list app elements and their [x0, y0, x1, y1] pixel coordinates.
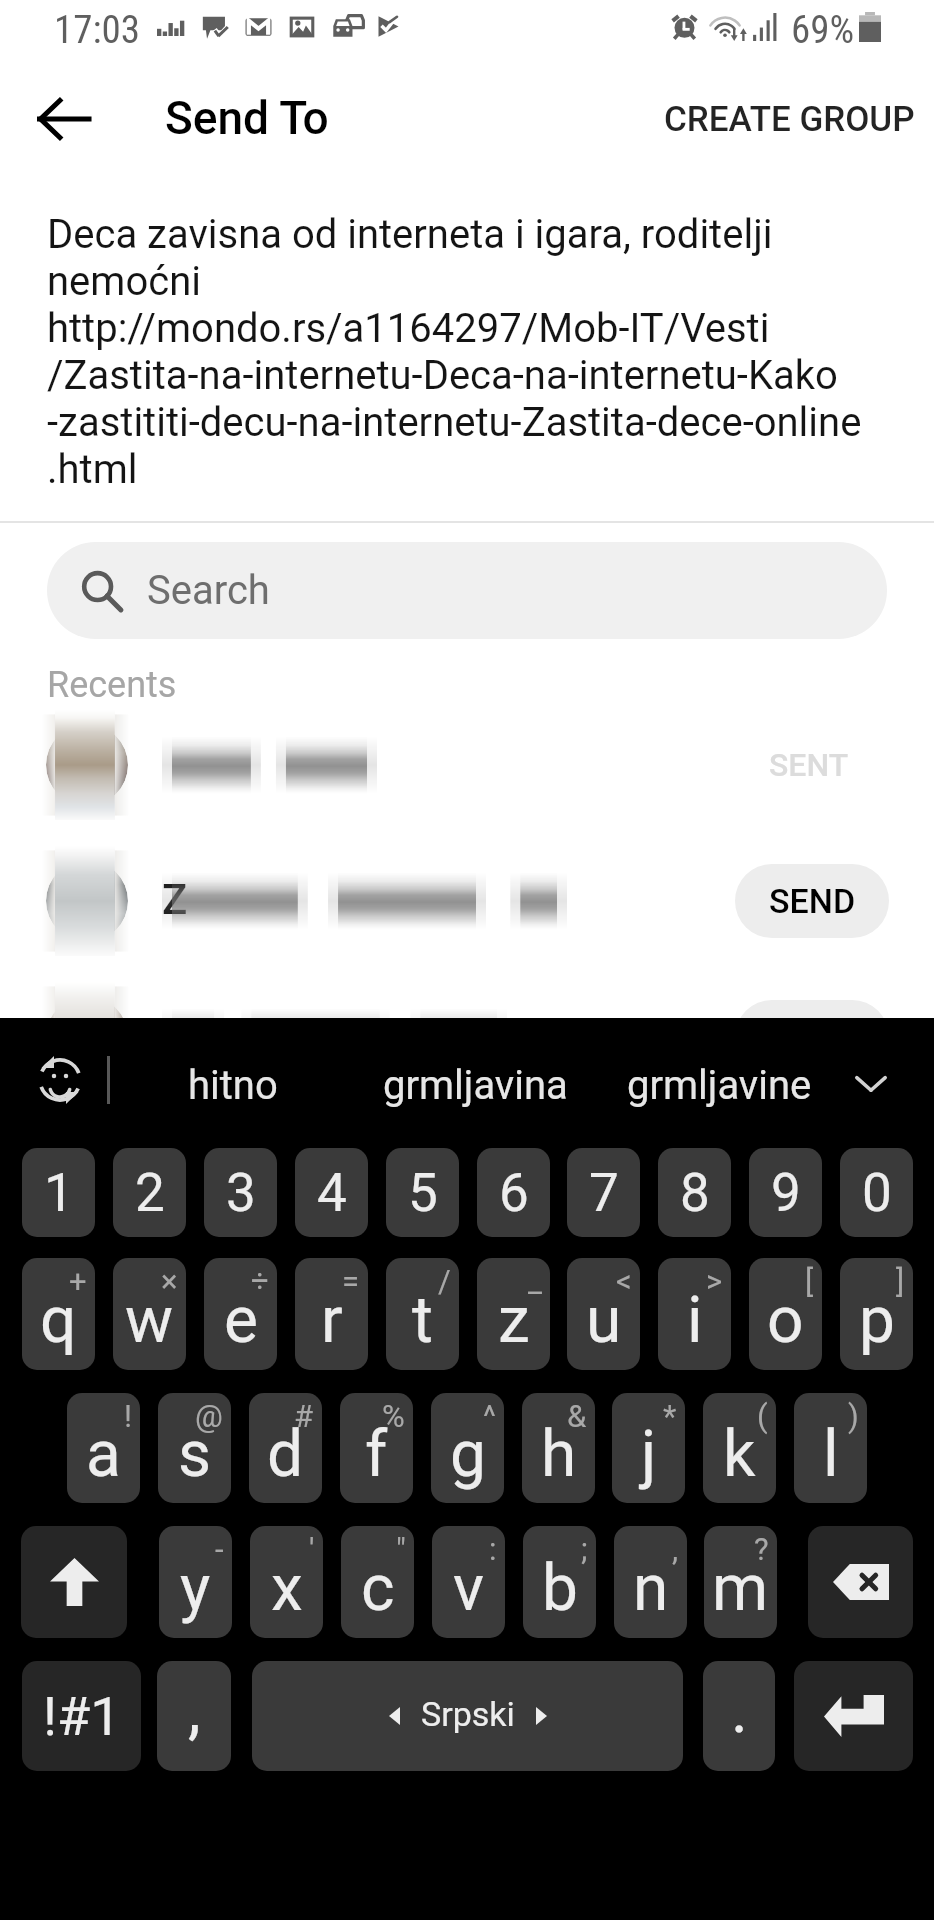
staticText: ,	[188, 1673, 201, 1748]
staticText: Recents	[47, 664, 177, 697]
staticText: Deca zavisna od interneta i igara, rodit…	[47, 211, 862, 493]
button[interactable]: A	[0, 969, 934, 1105]
staticText: r	[321, 1283, 343, 1358]
staticText: -	[215, 1531, 224, 1567]
button[interactable]: &	[522, 1393, 595, 1503]
staticText: (	[757, 1398, 768, 1434]
staticText: CREATE GROUP	[664, 99, 915, 140]
button[interactable]: '	[250, 1526, 323, 1638]
button[interactable]: SENT	[0, 697, 934, 833]
staticText: [	[805, 1263, 814, 1299]
staticText: v	[453, 1551, 484, 1626]
button[interactable]: *	[612, 1393, 685, 1503]
staticText: 7	[589, 1162, 619, 1224]
button[interactable]: %	[340, 1393, 413, 1503]
staticText: 9	[771, 1162, 801, 1224]
button[interactable]: +	[22, 1258, 95, 1370]
button[interactable]: ,	[157, 1661, 231, 1771]
button[interactable]: SEND	[735, 864, 889, 938]
staticText: SEND	[769, 1017, 856, 1057]
staticText: '	[309, 1531, 315, 1567]
button[interactable]: Z	[0, 833, 934, 969]
button[interactable]: 8	[658, 1148, 731, 1237]
staticText: "	[396, 1531, 406, 1567]
staticText: p	[859, 1283, 895, 1358]
button[interactable]: grmljavine	[600, 1018, 838, 1130]
button[interactable]: More suggestions	[838, 1018, 904, 1130]
button[interactable]: =	[295, 1258, 368, 1370]
staticText: 8	[680, 1162, 710, 1224]
staticText: w	[125, 1283, 174, 1358]
button[interactable]: 4	[295, 1148, 368, 1237]
button[interactable]: <	[567, 1258, 640, 1370]
button[interactable]: :	[432, 1526, 505, 1638]
button[interactable]: Search	[47, 542, 887, 639]
button[interactable]: SEND	[735, 1000, 889, 1074]
button[interactable]: @	[158, 1393, 231, 1503]
button[interactable]: >	[658, 1258, 731, 1370]
staticText: h	[541, 1417, 577, 1492]
staticText: &	[567, 1398, 587, 1434]
staticText: o	[767, 1283, 804, 1358]
button[interactable]: 9	[749, 1148, 822, 1237]
staticText: !	[124, 1398, 132, 1434]
button[interactable]: !#1	[22, 1661, 141, 1771]
staticText: m	[712, 1551, 769, 1626]
button[interactable]: -	[159, 1526, 232, 1638]
staticText: x	[271, 1551, 303, 1626]
button[interactable]: hitno	[125, 1018, 340, 1130]
staticText: j	[641, 1417, 657, 1492]
button[interactable]: )	[794, 1393, 867, 1503]
button[interactable]: grmljavina	[356, 1018, 594, 1130]
button[interactable]: !	[67, 1393, 140, 1503]
staticText: 4	[317, 1162, 347, 1224]
button[interactable]: Emoji	[26, 1046, 94, 1114]
button[interactable]: ]	[840, 1258, 913, 1370]
staticText: :	[489, 1531, 497, 1567]
staticText: grmljavina	[383, 1062, 568, 1109]
button[interactable]: Enter	[794, 1661, 913, 1771]
staticText: .	[731, 1673, 748, 1748]
staticText: l	[823, 1417, 839, 1492]
staticText: q	[40, 1283, 77, 1358]
staticText: 69%	[791, 7, 855, 53]
staticText: k	[723, 1417, 756, 1492]
button[interactable]: #	[249, 1393, 322, 1503]
button[interactable]: ^	[431, 1393, 504, 1503]
button[interactable]: ?	[704, 1526, 777, 1638]
button[interactable]: 0	[840, 1148, 913, 1237]
button[interactable]: ,	[614, 1526, 687, 1638]
button[interactable]: 6	[477, 1148, 550, 1237]
button[interactable]: 3	[204, 1148, 277, 1237]
staticText: *	[663, 1398, 677, 1434]
button[interactable]: [	[749, 1258, 822, 1370]
button[interactable]: 5	[386, 1148, 459, 1237]
staticText: >	[706, 1263, 723, 1299]
button[interactable]: "	[341, 1526, 414, 1638]
staticText: 6	[499, 1162, 529, 1224]
staticText: A	[162, 1011, 190, 1060]
button[interactable]: Backspace	[808, 1526, 913, 1638]
button[interactable]: (	[703, 1393, 776, 1503]
staticText: 0	[862, 1162, 892, 1224]
button[interactable]: ;	[523, 1526, 596, 1638]
staticText: ]	[896, 1263, 905, 1299]
staticText: ;	[581, 1531, 588, 1567]
button[interactable]: .	[703, 1661, 775, 1771]
staticText: @	[195, 1398, 223, 1434]
button[interactable]: ÷	[204, 1258, 277, 1370]
staticText: f	[365, 1417, 388, 1492]
button[interactable]: _	[477, 1258, 550, 1370]
button[interactable]: 1	[22, 1148, 95, 1237]
button[interactable]: Shift	[21, 1526, 127, 1638]
button[interactable]: Space	[252, 1661, 683, 1771]
button[interactable]: Back	[22, 78, 104, 160]
button[interactable]: /	[386, 1258, 459, 1370]
staticText: b	[542, 1551, 578, 1626]
staticText: z	[498, 1283, 530, 1358]
staticText: u	[586, 1283, 622, 1358]
button[interactable]: 7	[567, 1148, 640, 1237]
button[interactable]: CREATE GROUP	[634, 75, 934, 164]
button[interactable]: ×	[113, 1258, 186, 1370]
button[interactable]: 2	[113, 1148, 186, 1237]
